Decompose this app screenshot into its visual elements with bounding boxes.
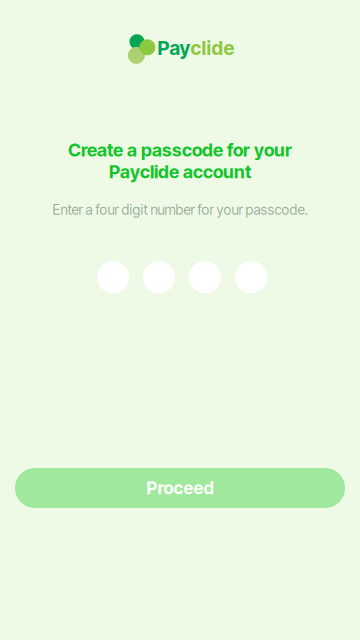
button[interactable]: Passcode entry <box>97 261 267 293</box>
staticText: Enter a four digit number for your passc… <box>52 202 307 218</box>
staticText: Create a passcode for your <box>68 139 292 161</box>
staticText: Proceed <box>146 477 213 498</box>
button[interactable]: Proceed <box>15 468 345 508</box>
staticText: clide <box>190 36 234 60</box>
staticText: Payclide account <box>109 161 251 183</box>
staticText: Pay <box>157 36 190 60</box>
